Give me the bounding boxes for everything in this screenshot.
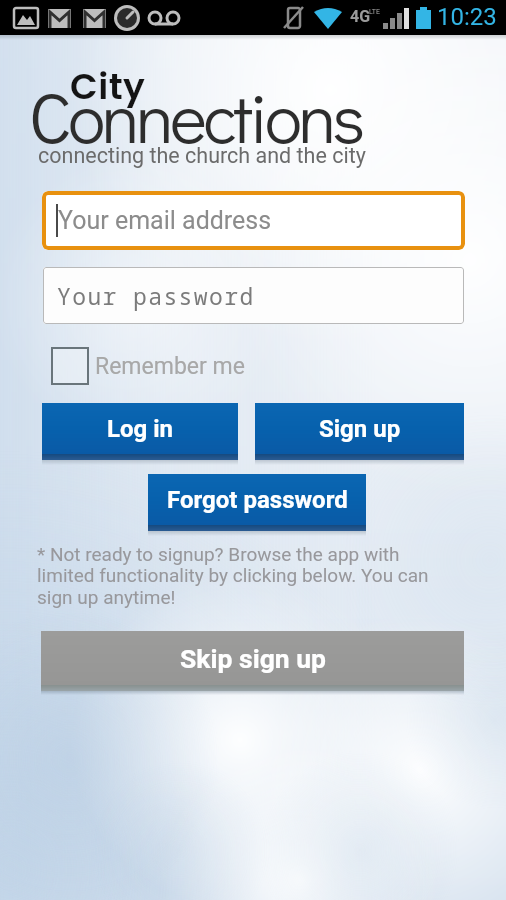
staticText: Sign up <box>319 415 401 443</box>
staticText: Log in <box>107 415 174 443</box>
button[interactable]: Your password <box>43 267 464 324</box>
staticText: Connections <box>29 70 362 162</box>
staticText: City <box>70 61 146 111</box>
staticText: * Not ready to signup? Browse the app wi… <box>37 543 429 609</box>
staticText: Forgot password <box>167 486 348 514</box>
button[interactable]: Forgot password <box>148 474 366 536</box>
button[interactable]: Skip sign up <box>41 631 464 695</box>
staticText: connecting the church and the city <box>38 143 366 168</box>
staticText: Remember me <box>95 353 245 380</box>
staticText: 4G <box>350 7 371 26</box>
staticText: Skip sign up <box>180 643 326 674</box>
button[interactable]: Your email address <box>42 191 465 250</box>
button[interactable]: Remember me <box>51 347 245 385</box>
button[interactable]: Sign up <box>255 403 464 465</box>
staticText: 10:23 <box>437 3 497 31</box>
staticText: Your password <box>57 280 255 311</box>
staticText: Your email address <box>58 206 272 235</box>
button[interactable]: Log in <box>42 403 238 465</box>
staticText: LTE <box>369 8 380 16</box>
